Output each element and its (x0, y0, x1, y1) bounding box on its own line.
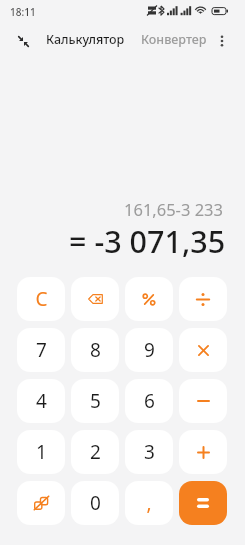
staticText: 7 (36, 337, 47, 363)
button[interactable]: Калькулятор (46, 31, 125, 48)
staticText: 161,65-3 233 (124, 198, 223, 220)
button[interactable]: Divide (179, 277, 227, 321)
button[interactable]: 9 (125, 328, 173, 372)
staticText: = -3 071,35 (69, 220, 226, 262)
button[interactable]: 1 (17, 430, 65, 474)
staticText: 4 (36, 388, 47, 414)
staticText: 3 (144, 439, 155, 465)
button[interactable]: Multiply (179, 328, 227, 372)
button[interactable]: 5 (71, 379, 119, 423)
button[interactable]: 2 (71, 430, 119, 474)
staticText: C (35, 286, 48, 312)
staticText: 8 (90, 337, 101, 363)
button[interactable] (125, 277, 173, 321)
staticText: 9 (144, 337, 155, 363)
button[interactable]: 6 (125, 379, 173, 423)
staticText: 2 (90, 439, 101, 465)
staticText: 1 (36, 439, 47, 465)
staticText: , (146, 490, 152, 516)
button[interactable]: C (17, 277, 65, 321)
staticText: 5 (90, 388, 101, 414)
staticText: 18:11 (10, 5, 36, 19)
button[interactable]: Minus (179, 379, 227, 423)
button[interactable]: Convert (17, 481, 65, 525)
button[interactable]: 0 (71, 481, 119, 525)
button[interactable]: 8 (71, 328, 119, 372)
staticText: 6 (144, 388, 155, 414)
button[interactable]: Plus (179, 430, 227, 474)
button[interactable]: Collapse (11, 29, 35, 53)
button[interactable]: Конвертер (141, 31, 207, 48)
button[interactable]: 7 (17, 328, 65, 372)
button[interactable]: More options (210, 29, 234, 53)
button[interactable]: 3 (125, 430, 173, 474)
button[interactable]: , (125, 481, 173, 525)
staticText: 0 (90, 490, 101, 516)
button[interactable]: Backspace (71, 277, 119, 321)
button[interactable]: 4 (17, 379, 65, 423)
button[interactable]: Equals (179, 481, 227, 525)
